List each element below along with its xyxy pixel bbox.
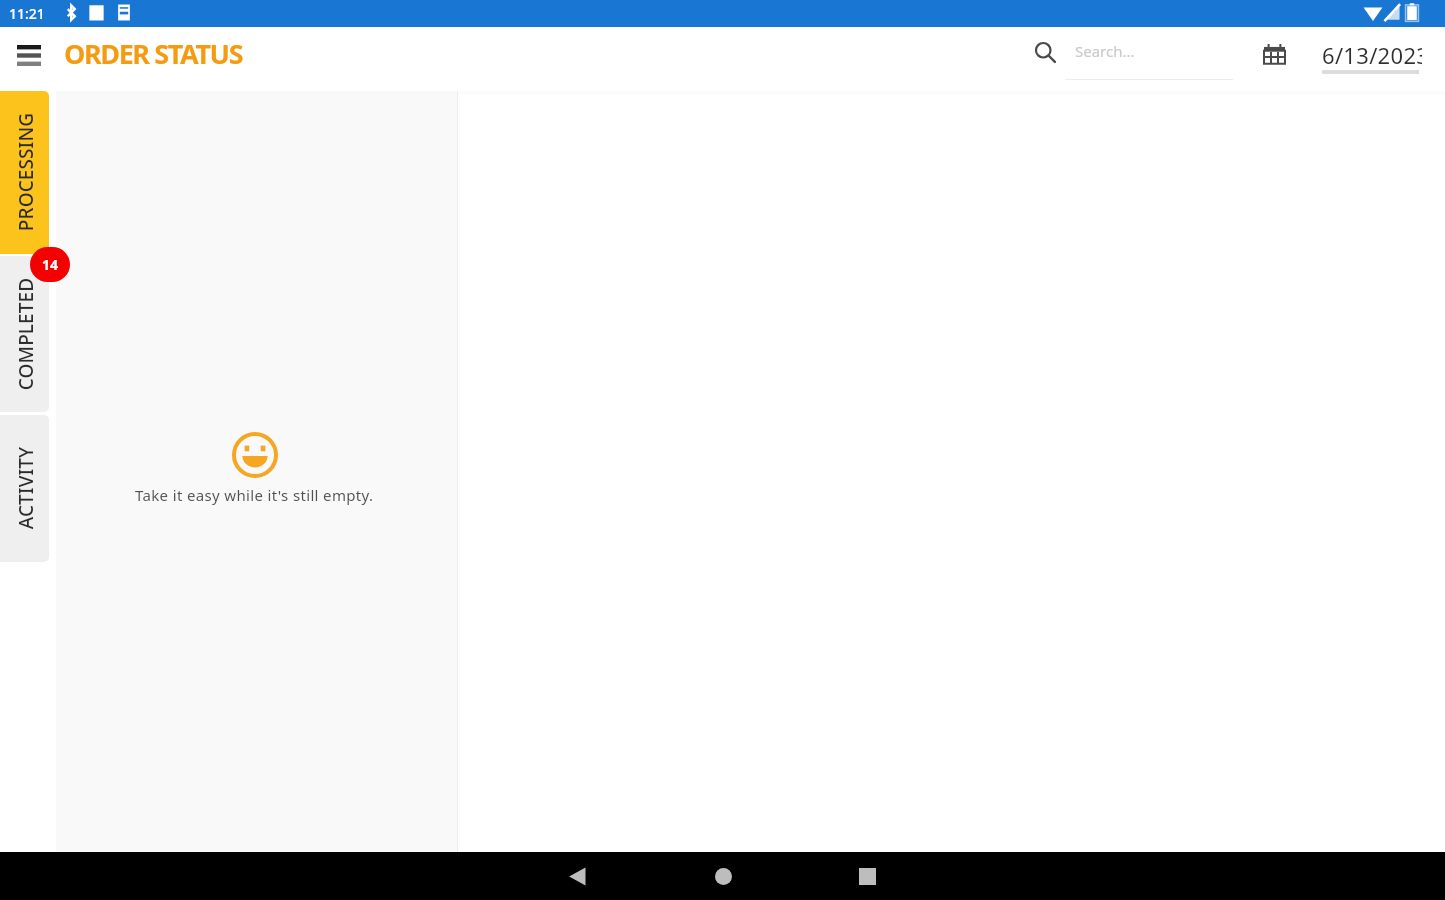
button[interactable]: Home [650, 852, 796, 900]
button[interactable]: Pick date [1256, 36, 1292, 72]
button[interactable]: Back [504, 852, 650, 900]
button[interactable]: Menu [0, 31, 58, 79]
button[interactable]: 6/13/2023 [1322, 38, 1422, 86]
staticText: 11:21 [9, 4, 45, 23]
button[interactable]: ACTIVITY [0, 415, 49, 562]
staticText: COMPLETED [12, 277, 38, 390]
staticText: 6/13/2023 [1322, 40, 1422, 70]
button[interactable]: PROCESSING [0, 91, 49, 254]
staticText: PROCESSING [12, 112, 38, 231]
staticText: 14 [42, 255, 59, 274]
button[interactable]: Search... [1065, 35, 1233, 80]
button[interactable]: 14 completed orders [30, 247, 70, 282]
button[interactable]: COMPLETED [0, 256, 49, 412]
staticText: Search... [1075, 41, 1135, 61]
staticText: Take it easy while it's still empty. [135, 485, 374, 505]
button[interactable]: Search [1027, 34, 1063, 70]
button[interactable]: Recents [796, 852, 942, 900]
staticText: ACTIVITY [12, 446, 38, 529]
staticText: ORDER STATUS [64, 35, 243, 72]
